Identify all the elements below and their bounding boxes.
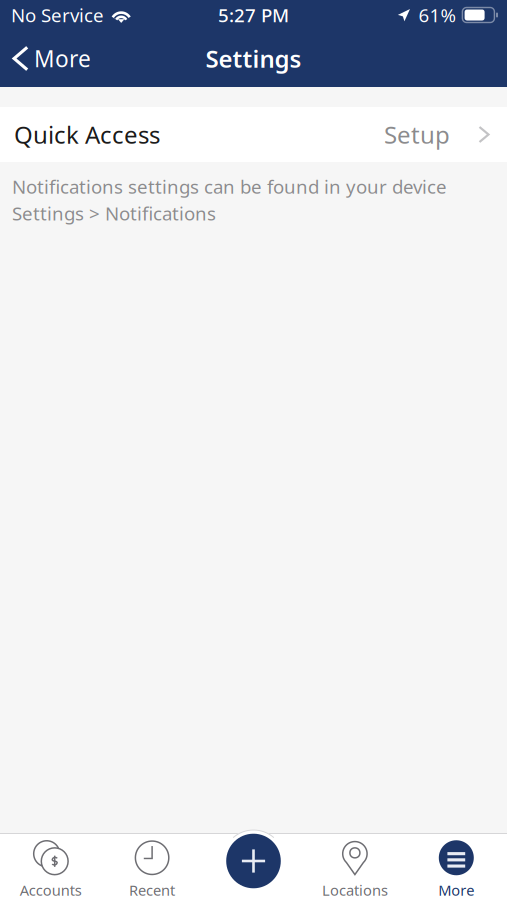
button[interactable]: Quick Access: [0, 107, 507, 162]
staticText: Notifications settings can be found in y…: [12, 174, 447, 199]
staticText: Recent: [129, 880, 175, 900]
staticText: More: [438, 880, 474, 900]
button[interactable]: Locations: [304, 828, 406, 900]
staticText: 61%: [418, 3, 456, 27]
staticText: Settings > Notifications: [12, 201, 216, 226]
staticText: Locations: [322, 880, 388, 900]
staticText: Quick Access: [14, 119, 160, 150]
button[interactable]: Back to More: [0, 36, 101, 80]
staticText: More: [34, 43, 91, 73]
staticText: Accounts: [20, 880, 82, 900]
button[interactable]: Recent: [101, 828, 203, 900]
button[interactable]: More: [406, 828, 507, 900]
staticText: [251, 880, 255, 900]
staticText: No Service: [11, 3, 104, 27]
button[interactable]: Accounts: [0, 828, 101, 900]
staticText: Setup: [384, 119, 450, 150]
staticText: Settings: [205, 43, 301, 74]
staticText: 5:27 PM: [218, 3, 289, 27]
button[interactable]: Add: [221, 829, 285, 893]
